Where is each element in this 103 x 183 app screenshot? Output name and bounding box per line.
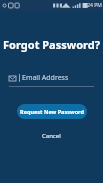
staticText: Cancel bbox=[42, 132, 61, 140]
staticText: Request New Password bbox=[20, 108, 84, 115]
staticText: Forgot Password? bbox=[0, 37, 103, 52]
button[interactable]: Request New Password bbox=[17, 104, 87, 119]
button[interactable]: Email bbox=[9, 73, 94, 87]
staticText: Email Address bbox=[22, 73, 69, 83]
staticText: 4:24 PM bbox=[83, 2, 102, 9]
button[interactable]: Cancel bbox=[34, 130, 69, 142]
other: Email bbox=[9, 75, 16, 82]
